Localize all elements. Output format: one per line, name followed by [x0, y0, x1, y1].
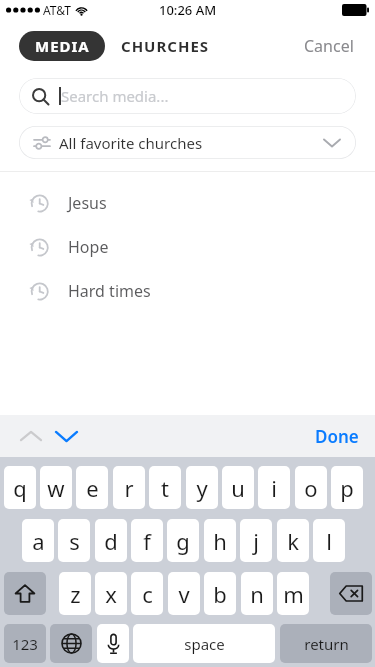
staticText: return	[304, 634, 349, 654]
staticText: p	[340, 473, 354, 503]
button[interactable]: g	[167, 519, 199, 562]
staticText: o	[304, 473, 318, 503]
button[interactable]: space	[133, 624, 275, 663]
button[interactable]: Shift	[4, 572, 46, 615]
button[interactable]: l	[313, 519, 345, 562]
staticText: t	[161, 473, 169, 503]
staticText: i	[271, 473, 277, 503]
button[interactable]: Jesus	[0, 188, 375, 218]
button[interactable]: b	[204, 572, 236, 615]
button[interactable]: d	[95, 519, 127, 562]
staticText: w	[47, 473, 65, 503]
staticText: 123	[12, 634, 38, 654]
button[interactable]: Hard times	[0, 276, 375, 306]
button[interactable]: Previous field	[10, 415, 52, 457]
button[interactable]: h	[204, 519, 236, 562]
button[interactable]: Cancel	[296, 31, 362, 61]
staticText: x	[105, 579, 117, 609]
button[interactable]: c	[131, 572, 163, 615]
staticText: All favorite churches	[59, 133, 203, 153]
button[interactable]: z	[59, 572, 91, 615]
button[interactable]: y	[186, 466, 218, 509]
button[interactable]: Next field	[45, 415, 87, 457]
staticText: g	[176, 526, 190, 556]
button[interactable]: e	[76, 466, 108, 509]
button[interactable]: Numbers	[4, 624, 46, 663]
staticText: f	[143, 526, 151, 556]
button[interactable]: Hope	[0, 232, 375, 262]
button[interactable]: Backspace	[330, 572, 372, 615]
button[interactable]: x	[95, 572, 127, 615]
button[interactable]: o	[295, 466, 327, 509]
staticText: Search media...	[61, 86, 169, 106]
button[interactable]: a	[22, 519, 54, 562]
button[interactable]: k	[277, 519, 309, 562]
button[interactable]: All favorite churches	[19, 126, 356, 159]
staticText: Hard times	[68, 280, 151, 302]
staticText: u	[231, 473, 245, 503]
staticText: d	[104, 526, 118, 556]
button[interactable]: m	[277, 572, 309, 615]
button[interactable]: n	[241, 572, 273, 615]
staticText: Cancel	[304, 35, 354, 57]
button[interactable]: i	[258, 466, 290, 509]
staticText: j	[253, 526, 259, 556]
button[interactable]: v	[168, 572, 200, 615]
button[interactable]: w	[40, 466, 72, 509]
staticText: 10:26 AM	[159, 1, 217, 19]
button[interactable]: p	[331, 466, 363, 509]
staticText: e	[86, 473, 99, 503]
staticText: m	[283, 579, 304, 609]
staticText: CHURCHES	[121, 36, 210, 56]
button[interactable]: Switch keyboard	[50, 624, 92, 663]
staticText: AT&T	[43, 2, 71, 18]
button[interactable]: return	[280, 624, 372, 663]
staticText: h	[213, 526, 227, 556]
staticText: v	[178, 579, 190, 609]
staticText: c	[142, 579, 153, 609]
staticText: space	[184, 634, 225, 654]
button[interactable]: u	[222, 466, 254, 509]
staticText: q	[13, 473, 27, 503]
staticText: MEDIA	[35, 36, 90, 56]
button[interactable]: Search media...	[19, 78, 356, 114]
button[interactable]: s	[58, 519, 90, 562]
button[interactable]: MEDIA	[19, 31, 105, 61]
staticText: Done	[315, 425, 359, 448]
button[interactable]: t	[149, 466, 181, 509]
button[interactable]: CHURCHES	[113, 31, 218, 61]
staticText: y	[196, 473, 208, 503]
button[interactable]: q	[4, 466, 36, 509]
button[interactable]: f	[131, 519, 163, 562]
staticText: a	[32, 526, 45, 556]
staticText: b	[213, 579, 227, 609]
staticText: Hope	[68, 236, 109, 258]
button[interactable]: Dictate	[97, 624, 129, 663]
staticText: k	[287, 526, 299, 556]
staticText: r	[124, 473, 134, 503]
staticText: l	[326, 526, 332, 556]
staticText: s	[69, 526, 80, 556]
staticText: z	[70, 579, 81, 609]
button[interactable]: j	[240, 519, 272, 562]
staticText: n	[250, 579, 264, 609]
button[interactable]: Done	[299, 415, 375, 457]
button[interactable]: r	[113, 466, 145, 509]
staticText: Jesus	[68, 192, 107, 214]
